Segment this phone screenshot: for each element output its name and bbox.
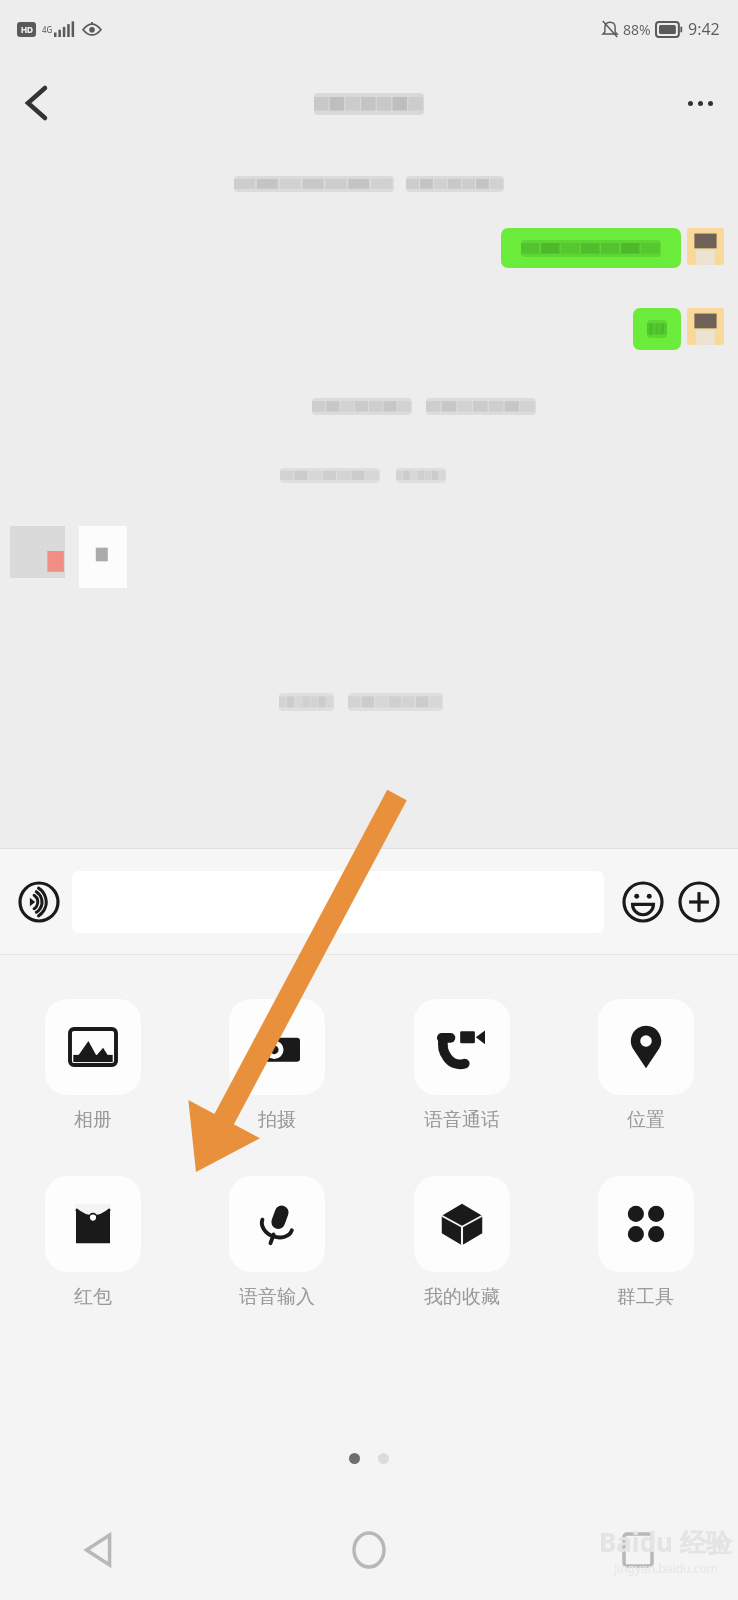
button[interactable]: More options (672, 75, 728, 131)
staticText: jingyan.baidu.com (614, 1560, 718, 1576)
staticText: 群工具 (617, 1285, 674, 1309)
button[interactable]: 拍摄 (204, 999, 349, 1132)
button[interactable] (633, 308, 681, 350)
staticText: 9:42 (688, 18, 720, 40)
button[interactable]: Emoji (618, 877, 668, 927)
staticText: 位置 (627, 1108, 665, 1132)
button[interactable] (501, 228, 681, 268)
staticText: 语音通话 (424, 1108, 500, 1132)
button[interactable]: 我的收藏 (389, 1176, 534, 1309)
staticText: 红包 (74, 1285, 112, 1309)
button[interactable]: More functions (674, 877, 724, 927)
button[interactable]: Recent apps (598, 1510, 678, 1590)
button[interactable]: 红包 (20, 1176, 165, 1309)
staticText: HD (21, 24, 33, 35)
button[interactable]: 语音通话 (389, 999, 534, 1132)
button[interactable]: 相册 (20, 999, 165, 1132)
staticText: 我的收藏 (424, 1285, 500, 1309)
button[interactable] (72, 871, 604, 933)
staticText: 语音输入 (239, 1285, 315, 1309)
staticText: 88% (623, 20, 651, 39)
staticText: Baidu 经验 (599, 1524, 732, 1560)
staticText: 4G (42, 24, 53, 35)
button[interactable]: Back (8, 75, 64, 131)
button[interactable]: 群工具 (573, 1176, 718, 1309)
staticText: 相册 (74, 1108, 112, 1132)
button[interactable]: Home (329, 1510, 409, 1590)
button[interactable]: Voice input (14, 877, 64, 927)
button[interactable]: Back (60, 1510, 140, 1590)
button[interactable]: 语音输入 (204, 1176, 349, 1309)
button[interactable]: 位置 (573, 999, 718, 1132)
staticText: 拍摄 (258, 1108, 296, 1132)
